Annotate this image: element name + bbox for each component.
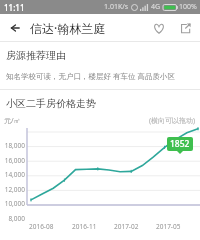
staticText: 12,000 bbox=[1, 185, 25, 194]
staticText: 信达·翰林兰庭 bbox=[30, 20, 106, 36]
staticText: 1852 bbox=[170, 138, 190, 150]
staticText: 11:11 bbox=[4, 2, 25, 13]
staticText: 8,000 bbox=[1, 214, 25, 223]
staticText: 18,000 bbox=[1, 141, 25, 150]
staticText: 14,000 bbox=[1, 170, 25, 179]
button[interactable]: Favorite bbox=[146, 15, 172, 41]
staticText: 100% bbox=[179, 2, 197, 12]
staticText: 16,000 bbox=[1, 156, 25, 165]
button[interactable]: 1852 bbox=[167, 137, 193, 154]
button[interactable]: Back bbox=[0, 14, 28, 42]
staticText: 房源推荐理由 bbox=[6, 49, 66, 62]
staticText: 2017-02 bbox=[114, 222, 156, 231]
staticText: 小区二手房价格走势 bbox=[6, 97, 96, 110]
button[interactable]: Price trend chart bbox=[0, 126, 200, 222]
staticText: 2016-08 bbox=[29, 222, 72, 231]
staticText: 10,000 bbox=[1, 199, 25, 208]
button[interactable]: Share bbox=[172, 15, 198, 41]
staticText: 4G bbox=[151, 2, 161, 12]
staticText: (横向可以拖动) bbox=[149, 116, 196, 126]
staticText: 2017-05 bbox=[156, 222, 198, 231]
staticText: 1.01K/s bbox=[104, 2, 129, 12]
staticText: 知名学校可读，无户口，楼层好 有车位 高品质小区 bbox=[6, 71, 175, 81]
staticText: 元/㎡ bbox=[4, 116, 21, 126]
staticText: 2016-11 bbox=[72, 222, 114, 231]
